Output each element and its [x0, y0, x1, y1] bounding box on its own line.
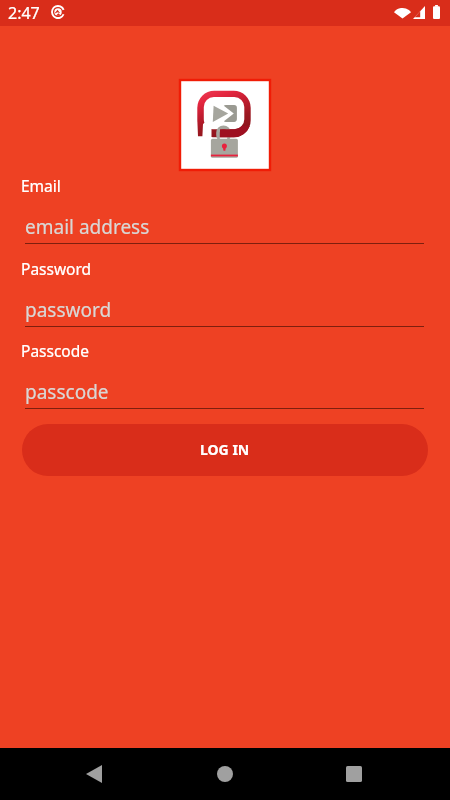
staticText: passcode — [25, 379, 109, 405]
button[interactable]: passcode — [25, 371, 424, 409]
button[interactable]: Recent apps — [314, 748, 394, 800]
staticText: Password — [21, 258, 92, 279]
button[interactable]: Home — [185, 748, 265, 800]
button[interactable]: LOG IN — [22, 424, 428, 476]
button[interactable]: password — [25, 289, 424, 327]
staticText: LOG IN — [200, 440, 250, 459]
staticText: password — [25, 297, 112, 323]
staticText: Email — [21, 175, 61, 196]
other: Location off — [51, 5, 65, 19]
staticText: email address — [25, 214, 150, 240]
staticText: 2:47 — [8, 2, 40, 24]
button[interactable]: Back — [54, 748, 134, 800]
button[interactable]: email address — [25, 206, 424, 244]
staticText: Passcode — [21, 340, 90, 361]
